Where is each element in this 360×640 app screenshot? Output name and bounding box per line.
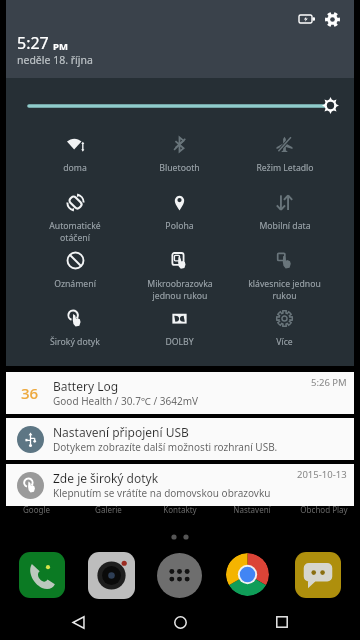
staticText: 5:27 bbox=[17, 32, 49, 54]
button[interactable]: Poloha bbox=[127, 189, 232, 247]
staticText: neděle 18. října bbox=[17, 53, 93, 67]
staticText: Oznámení bbox=[54, 278, 96, 290]
staticText: Široký dotyk bbox=[50, 336, 100, 348]
button[interactable]: Zde je široký dotyk bbox=[6, 464, 354, 506]
staticText: Režim Letadlo bbox=[256, 162, 314, 174]
staticText: Zde je široký dotyk bbox=[53, 470, 159, 486]
button[interactable]: Oznámení bbox=[23, 247, 127, 305]
button[interactable]: Phone bbox=[19, 552, 65, 598]
staticText: Poloha bbox=[165, 220, 194, 232]
button[interactable]: DOLBY bbox=[127, 305, 232, 363]
button[interactable]: Home bbox=[156, 604, 204, 640]
staticText: doma bbox=[63, 162, 87, 174]
staticText: Bluetooth bbox=[159, 162, 200, 174]
button[interactable]: Back bbox=[54, 604, 102, 640]
button[interactable]: Nastavení připojení USB bbox=[6, 418, 354, 460]
button[interactable]: Mobilní data bbox=[232, 189, 337, 247]
button[interactable]: Camera bbox=[88, 552, 135, 599]
staticText: 2015-10-13 bbox=[297, 468, 347, 481]
button[interactable]: Více bbox=[232, 305, 337, 363]
button[interactable]: Recent apps bbox=[258, 604, 306, 640]
staticText: PM bbox=[53, 40, 68, 53]
staticText: Galerie bbox=[95, 504, 122, 515]
staticText: Google bbox=[23, 504, 50, 515]
button[interactable]: Brightness bbox=[6, 78, 354, 131]
button[interactable]: Mikroobrazovka jednou rukou bbox=[127, 247, 232, 305]
button[interactable]: klávesnice jednou rukou bbox=[232, 247, 337, 305]
staticText: Kontakty bbox=[163, 504, 197, 515]
button[interactable]: Široký dotyk bbox=[23, 305, 127, 363]
staticText: Nastavení bbox=[233, 504, 271, 515]
staticText: Obchod Play bbox=[300, 504, 348, 515]
button[interactable]: Chrome bbox=[226, 553, 269, 596]
staticText: Automatické otáčení bbox=[49, 220, 101, 244]
staticText: Battery Log bbox=[53, 378, 119, 394]
button[interactable]: doma bbox=[23, 131, 127, 189]
button[interactable]: All apps bbox=[157, 553, 202, 598]
staticText: DOLBY bbox=[165, 336, 194, 348]
staticText: Mobilní data bbox=[259, 220, 311, 232]
staticText: Mikroobrazovka jednou rukou bbox=[147, 278, 213, 302]
staticText: 5:26 PM bbox=[311, 376, 347, 389]
button[interactable]: Automatické otáčení bbox=[23, 189, 127, 247]
staticText: Dotykem zobrazíte další možnosti rozhran… bbox=[53, 440, 278, 454]
staticText: Nastavení připojení USB bbox=[53, 424, 189, 440]
button[interactable]: 36 bbox=[6, 372, 354, 414]
staticText: klávesnice jednou rukou bbox=[248, 278, 321, 302]
staticText: 36 bbox=[21, 383, 39, 403]
staticText: Více bbox=[276, 336, 293, 348]
staticText: Good Health / 30.7℃ / 3642mV bbox=[53, 394, 199, 408]
button[interactable]: Settings bbox=[324, 11, 341, 28]
staticText: Klepnutím se vrátíte na domovskou obrazo… bbox=[53, 486, 271, 500]
button[interactable]: Režim Letadlo bbox=[232, 131, 337, 189]
button[interactable]: Messages bbox=[295, 552, 341, 598]
button[interactable]: Bluetooth bbox=[127, 131, 232, 189]
